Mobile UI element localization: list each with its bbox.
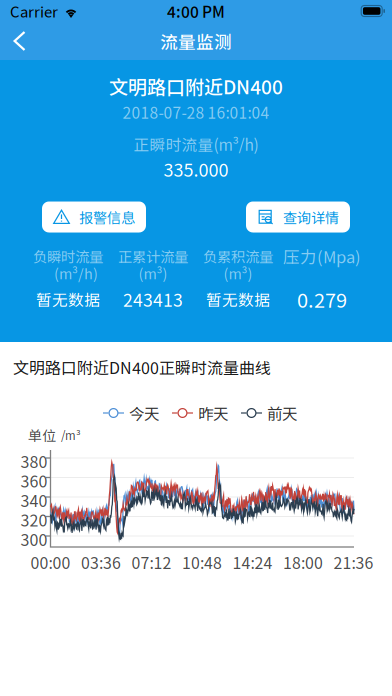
staticText: 21:36: [333, 550, 373, 573]
staticText: 03:36: [81, 550, 121, 573]
staticText: 320: [20, 508, 47, 531]
staticText: (m³): [223, 263, 252, 283]
staticText: 暂无数据: [36, 288, 100, 310]
staticText: 正瞬时流量(m³/h): [133, 133, 258, 155]
staticText: Carrier: [10, 0, 58, 22]
button[interactable]: 查询详情: [246, 201, 350, 232]
staticText: 00:00: [30, 550, 70, 573]
staticText: 报警信息: [79, 207, 135, 227]
staticText: 暂无数据: [206, 288, 270, 310]
staticText: 文明路口附近DN400正瞬时流量曲线: [13, 355, 271, 379]
staticText: 负瞬时流量: [33, 246, 103, 266]
staticText: 300: [20, 527, 47, 551]
staticText: 10:48: [182, 550, 222, 573]
staticText: 昨天: [198, 402, 228, 424]
staticText: 4:00 PM: [167, 0, 225, 22]
staticText: 文明路口附近DN400: [109, 72, 283, 100]
staticText: 正累计流量: [118, 246, 188, 266]
staticText: 单位: [28, 425, 56, 445]
staticText: 07:12: [131, 550, 171, 573]
staticText: 前天: [267, 402, 297, 424]
button[interactable]: 报警信息: [42, 201, 146, 232]
staticText: 今天: [129, 402, 159, 424]
staticText: 360: [20, 469, 47, 492]
staticText: 0.279: [297, 284, 347, 313]
staticText: 335.000: [163, 156, 228, 182]
staticText: 流量监测: [160, 28, 232, 54]
staticText: 380: [20, 449, 47, 473]
staticText: 243413: [123, 286, 183, 312]
staticText: /m³: [61, 427, 81, 443]
staticText: 负累积流量: [203, 246, 273, 266]
staticText: 压力(Mpa): [283, 244, 361, 268]
staticText: 查询详情: [283, 207, 339, 227]
button[interactable]: 返回: [0, 22, 40, 59]
staticText: (m³/h): [54, 263, 98, 283]
staticText: (m³): [138, 263, 167, 283]
staticText: 14:24: [232, 550, 272, 573]
staticText: 18:00: [283, 550, 323, 573]
staticText: 340: [20, 488, 47, 512]
staticText: 2018-07-28 16:01:04: [122, 101, 269, 123]
